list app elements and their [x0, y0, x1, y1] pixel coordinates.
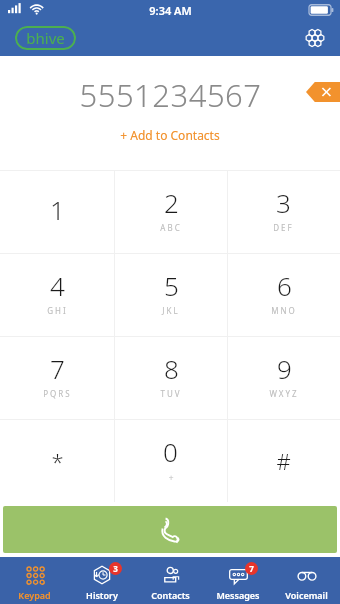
staticText: Contacts [151, 589, 190, 601]
staticText: 2 [164, 185, 179, 220]
button[interactable]: Call [3, 506, 337, 553]
staticText: 9:34 AM [149, 3, 192, 18]
staticText: 7 [249, 563, 254, 574]
button[interactable]: Keypad [0, 557, 68, 604]
button[interactable]: Hive menu [300, 23, 330, 53]
staticText: 5551234567 [79, 74, 262, 116]
button[interactable]: Contacts [136, 557, 204, 604]
button[interactable]: 3 [227, 171, 340, 253]
staticText: + Add to Contacts [120, 127, 220, 143]
button[interactable]: 7 [204, 557, 272, 604]
staticText: 1 [50, 192, 65, 227]
button[interactable]: Voicemail [272, 557, 340, 604]
staticText: Messages [216, 589, 260, 601]
button[interactable]: 7 [0, 337, 114, 419]
staticText: JKL [162, 305, 180, 316]
button[interactable]: bhive [15, 26, 76, 50]
staticText: MNO [271, 305, 297, 316]
staticText: 4 [50, 268, 65, 303]
button[interactable]: 5 [114, 254, 227, 336]
button[interactable]: 3 [68, 557, 136, 604]
button[interactable]: 9 [227, 337, 340, 419]
staticText: 5 [164, 268, 179, 303]
button[interactable]: + Add to Contacts [114, 125, 226, 145]
staticText: History [86, 589, 118, 601]
button[interactable]: 6 [227, 254, 340, 336]
button[interactable]: 8 [114, 337, 227, 419]
button[interactable]: Backspace [306, 82, 340, 102]
staticText: # [276, 446, 291, 476]
button[interactable]: * [0, 420, 114, 502]
staticText: + [168, 471, 174, 483]
staticText: 0 [163, 434, 178, 469]
staticText: DEF [273, 222, 294, 233]
button[interactable]: 0 [114, 420, 227, 502]
staticText: ABC [160, 222, 182, 233]
staticText: Voicemail [285, 589, 328, 601]
button[interactable]: 2 [114, 171, 227, 253]
staticText: 8 [164, 351, 179, 386]
staticText: 3 [113, 563, 118, 574]
staticText: * [51, 446, 64, 476]
staticText: bhive [26, 28, 65, 48]
staticText: GHI [47, 305, 68, 316]
button[interactable]: # [227, 420, 340, 502]
button[interactable]: 4 [0, 254, 114, 336]
button[interactable]: 1 [0, 171, 114, 253]
staticText: 6 [277, 268, 292, 303]
staticText: TUV [160, 388, 182, 399]
staticText: 9 [277, 351, 292, 386]
staticText: PQRS [43, 388, 72, 399]
staticText: Keypad [18, 589, 51, 601]
staticText: 3 [276, 185, 291, 220]
staticText: 7 [50, 351, 65, 386]
staticText: WXYZ [269, 388, 299, 399]
